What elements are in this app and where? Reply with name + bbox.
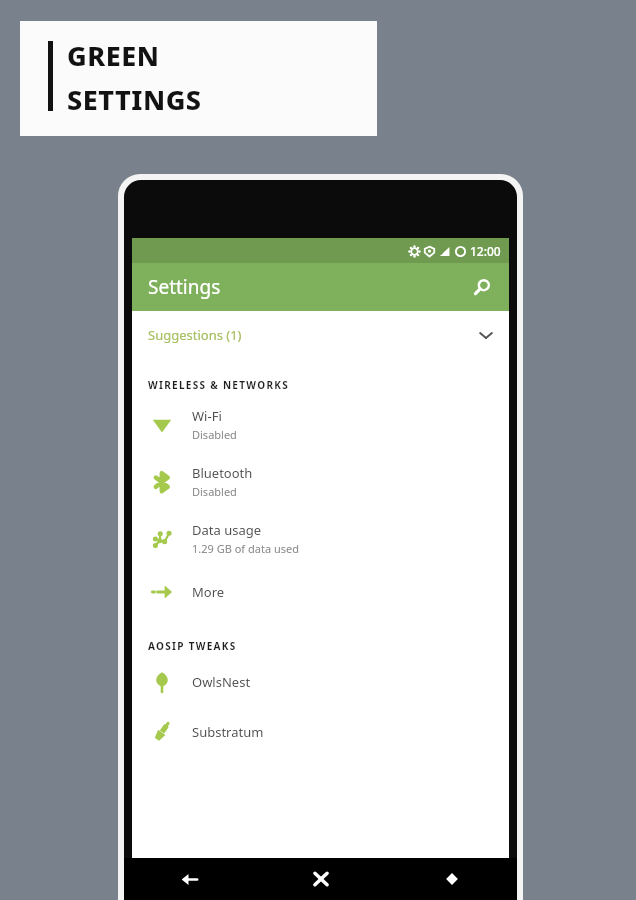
staticText: Settings	[148, 274, 221, 300]
button[interactable]: OwlsNest	[132, 657, 509, 707]
button[interactable]: More	[132, 567, 509, 617]
staticText: Disabled	[192, 484, 237, 499]
button[interactable]: Substratum	[132, 707, 509, 757]
staticText: SETTINGS	[67, 81, 202, 118]
button[interactable]: Home	[255, 858, 386, 900]
staticText: 1.29 GB of data used	[192, 541, 299, 556]
staticText: Suggestions (1)	[148, 326, 242, 344]
staticText: Wi-Fi	[192, 407, 222, 425]
staticText: Disabled	[192, 427, 237, 442]
button[interactable]: Suggestions (1)	[132, 311, 509, 358]
staticText: OwlsNest	[192, 673, 251, 691]
button[interactable]: Bluetooth	[132, 453, 509, 510]
button[interactable]: Wi-Fi	[132, 396, 509, 453]
staticText: WIRELESS & NETWORKS	[148, 378, 290, 392]
staticText: Substratum	[192, 723, 264, 741]
staticText: AOSIP TWEAKS	[148, 639, 237, 653]
staticText: Bluetooth	[192, 464, 253, 482]
staticText: More	[192, 583, 225, 601]
staticText: 12:00	[470, 243, 501, 259]
staticText: GREEN	[67, 37, 160, 74]
button[interactable]: Search	[463, 269, 499, 305]
button[interactable]: Recents	[386, 858, 517, 900]
button[interactable]: Back	[124, 858, 255, 900]
button[interactable]: Data usage	[132, 510, 509, 567]
staticText: Data usage	[192, 521, 262, 539]
